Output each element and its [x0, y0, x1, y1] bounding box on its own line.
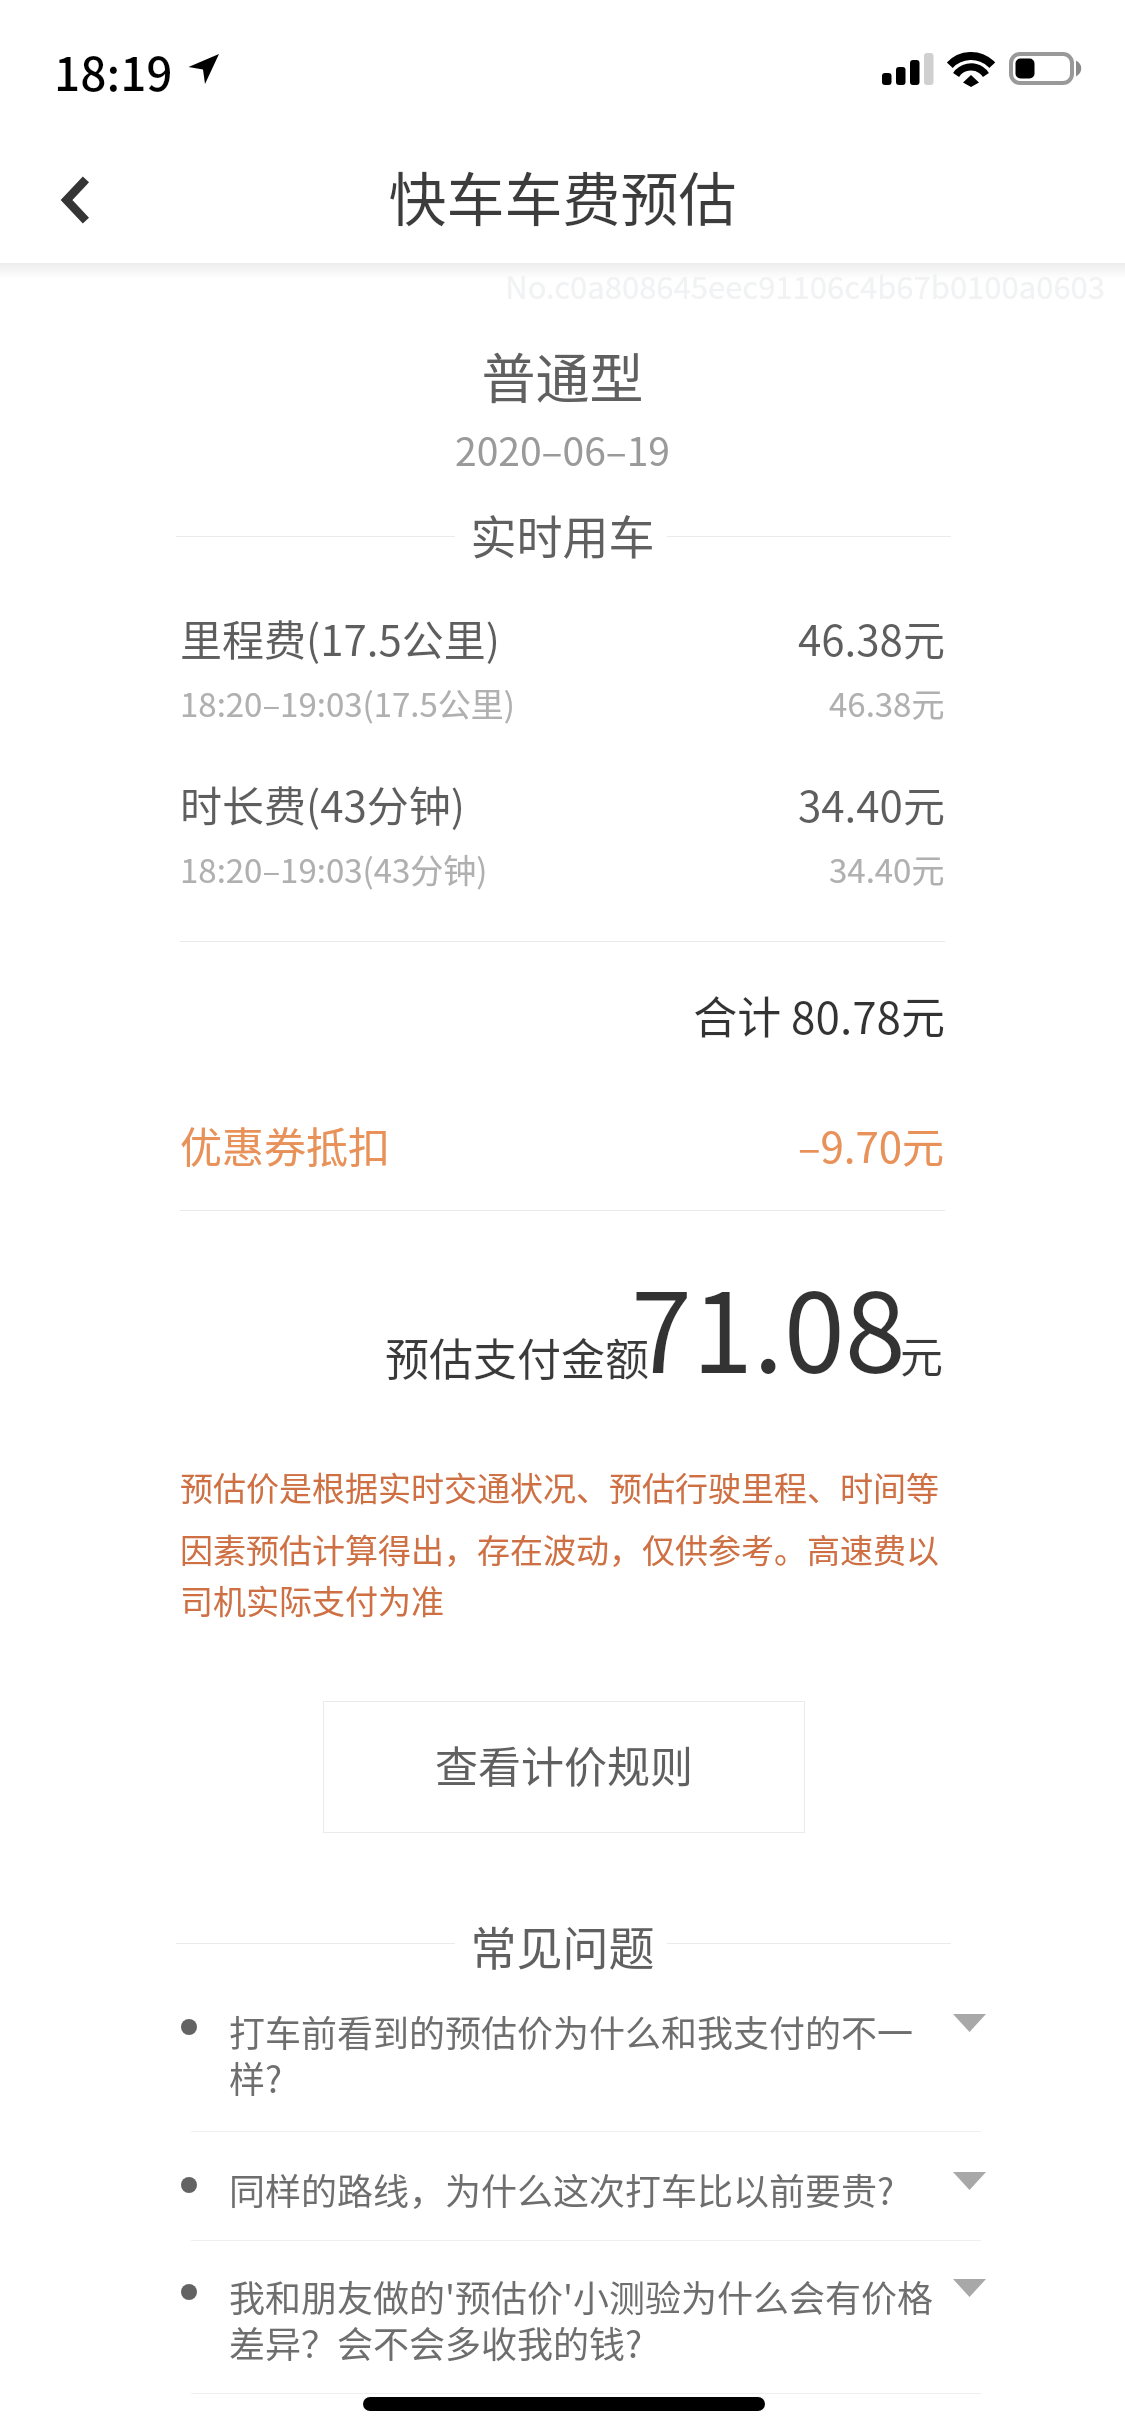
staticText: 同样的路线，为什么这次打车比以前要贵? — [229, 2163, 895, 2215]
staticText: 优惠券抵扣 — [180, 1114, 391, 1175]
staticText: 常见问题 — [0, 1912, 1125, 1979]
staticText: 18:19 — [54, 38, 173, 105]
staticText: 18:20–19:03(17.5公里) — [180, 679, 515, 727]
staticText: 样? — [229, 2051, 283, 2103]
button[interactable]: 查看计价规则 — [323, 1701, 805, 1833]
staticText: 34.40元 — [829, 845, 945, 893]
staticText: 预估价是根据实时交通状况、预估行驶里程、时间等 — [180, 1463, 939, 1511]
staticText: 时长费(43分钟) — [180, 773, 466, 834]
staticText: 预估支付金额 — [385, 1325, 649, 1389]
button[interactable]: 我和朋友做的'预估价'小测验为什么会有价格 — [0, 2256, 1125, 2376]
staticText: 2020–06–19 — [0, 421, 1125, 477]
staticText: 合计 80.78元 — [0, 983, 945, 1047]
staticText: –9.70元 — [798, 1114, 945, 1175]
staticText: 差异？会不会多收我的钱? — [229, 2316, 643, 2368]
button[interactable]: 同样的路线，为什么这次打车比以前要贵? — [0, 2149, 1125, 2223]
staticText: 普通型 — [0, 336, 1125, 414]
staticText: 18:20–19:03(43分钟) — [180, 845, 488, 893]
staticText: 46.38元 — [829, 679, 945, 727]
staticText: 快车车费预估 — [0, 154, 1125, 238]
staticText: 司机实际支付为准 — [180, 1576, 444, 1624]
staticText: 打车前看到的预估价为什么和我支付的不一 — [229, 2005, 914, 2057]
staticText: 元 — [900, 1323, 943, 1385]
staticText: 46.38元 — [798, 607, 945, 668]
staticText: 我和朋友做的'预估价'小测验为什么会有价格 — [229, 2270, 934, 2322]
staticText: 查看计价规则 — [435, 1733, 693, 1795]
staticText: 因素预估计算得出，存在波动，仅供参考。高速费以 — [180, 1525, 939, 1573]
button[interactable]: Back — [32, 160, 116, 244]
button[interactable]: 优惠券抵扣 — [180, 1114, 945, 1175]
staticText: No.c0a808645eec91106c4b67b0100a0603 — [0, 263, 1105, 308]
button[interactable]: 打车前看到的预估价为什么和我支付的不一 — [0, 1991, 1125, 2111]
staticText: 34.40元 — [798, 773, 945, 834]
staticText: 71.08 — [631, 1245, 906, 1404]
staticText: 里程费(17.5公里) — [180, 607, 500, 668]
staticText: 实时用车 — [0, 501, 1125, 568]
